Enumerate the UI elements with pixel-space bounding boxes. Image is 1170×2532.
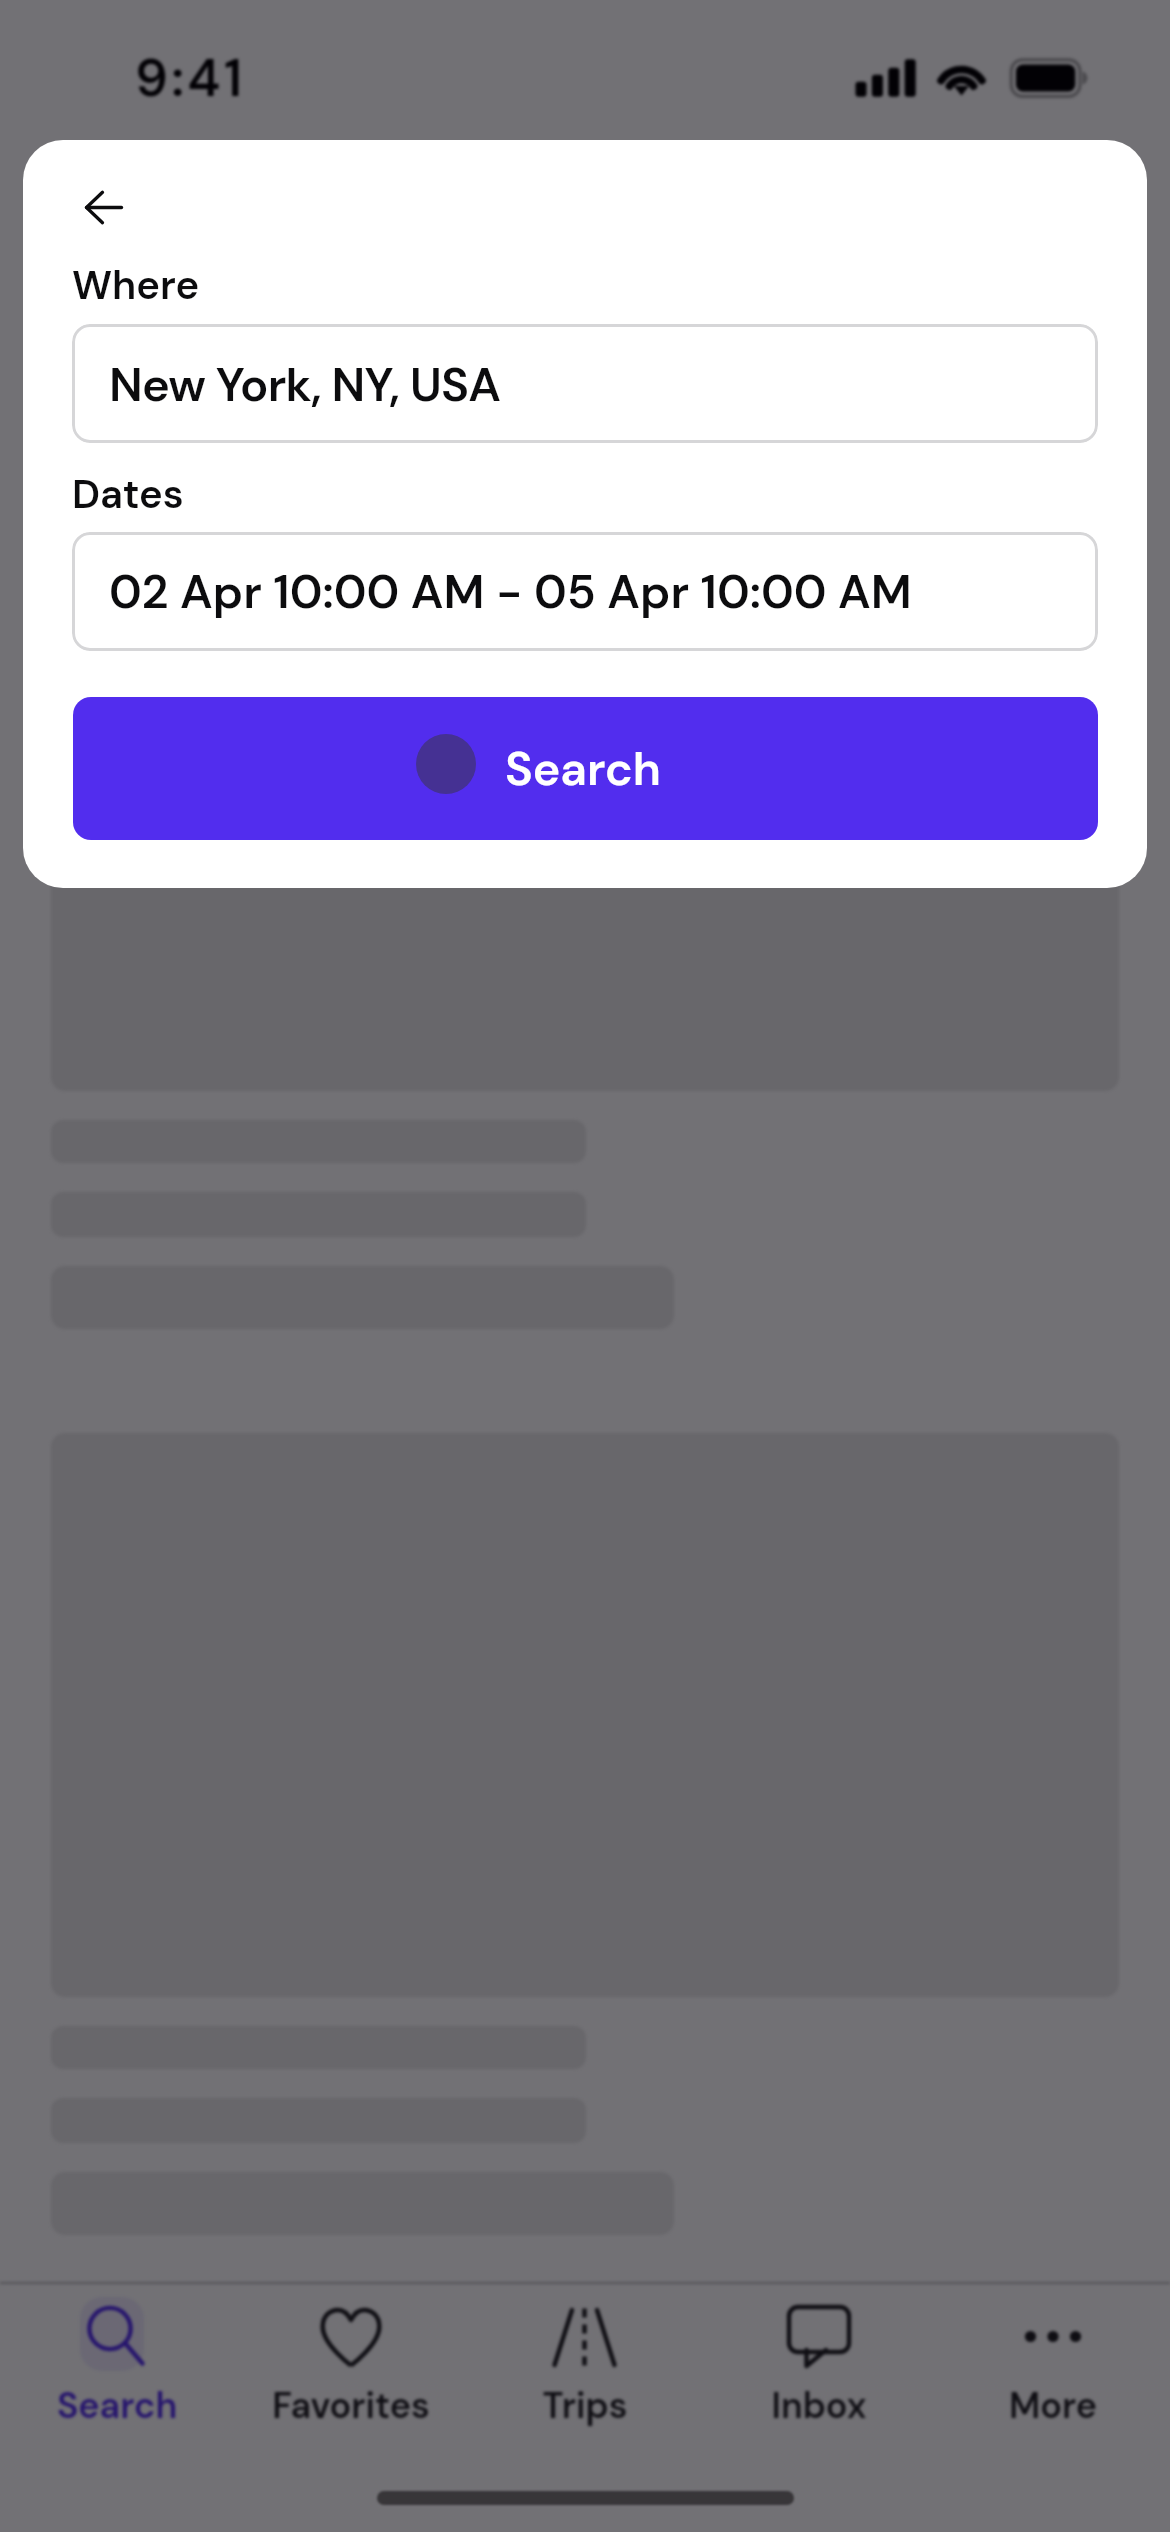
button[interactable]: Search xyxy=(0,2292,234,2432)
staticText: New York, NY, USA xyxy=(109,354,501,415)
button[interactable]: Inbox xyxy=(702,2292,936,2432)
staticText: Trips xyxy=(468,2382,702,2430)
button[interactable]: Search xyxy=(73,697,1098,840)
staticText: Favorites xyxy=(234,2382,468,2430)
button[interactable]: Favorites xyxy=(234,2292,468,2432)
button[interactable]: New York, NY, USA xyxy=(72,324,1098,443)
button[interactable]: Trips xyxy=(468,2292,702,2432)
button[interactable]: 02 Apr 10:00 AM - 05 Apr 10:00 AM xyxy=(72,532,1098,651)
staticText: Inbox xyxy=(702,2382,936,2430)
button[interactable]: More xyxy=(936,2292,1170,2432)
staticText: Search xyxy=(505,739,661,800)
staticText: Dates xyxy=(72,468,184,520)
staticText: 02 Apr 10:00 AM - 05 Apr 10:00 AM xyxy=(109,561,912,622)
staticText: Search xyxy=(0,2382,234,2430)
staticText: 9:41 xyxy=(135,44,246,112)
staticText: More xyxy=(936,2382,1170,2430)
staticText: Where xyxy=(72,259,200,311)
button[interactable]: Back xyxy=(68,171,140,243)
